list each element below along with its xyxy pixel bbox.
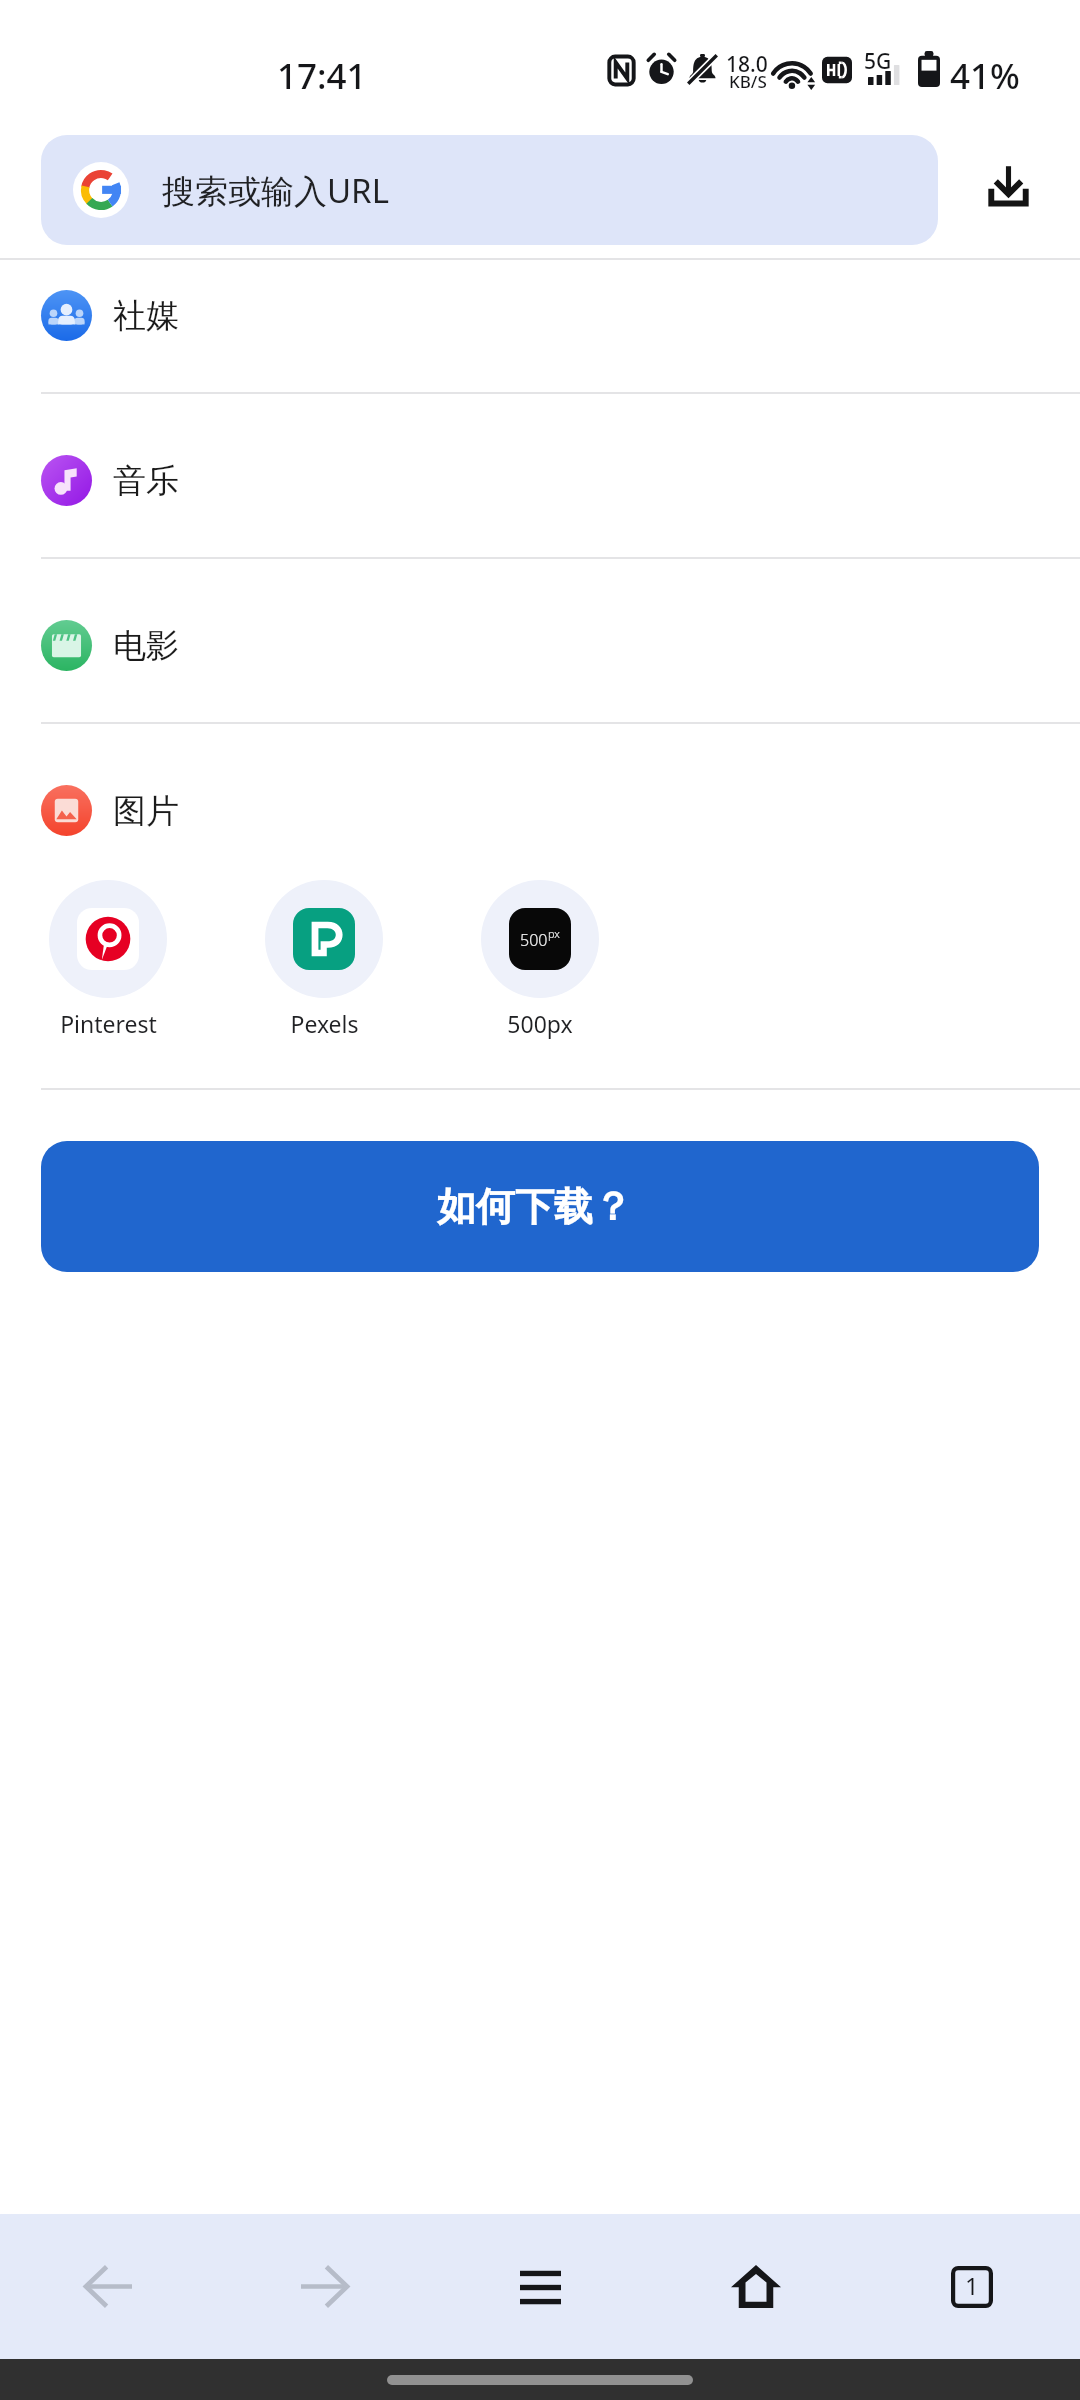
button[interactable]: 500 [440, 880, 640, 1039]
staticText: 41% [950, 52, 1020, 100]
button[interactable]: 如何下载？ [41, 1141, 1039, 1272]
staticText: 1 [965, 2269, 979, 2302]
staticText: 500px [507, 1008, 573, 1039]
staticText: Pinterest [60, 1008, 157, 1039]
staticText: 电影 [113, 625, 179, 667]
button[interactable]: Forward [216, 2214, 432, 2359]
staticText: 图片 [113, 790, 179, 832]
button[interactable]: 电影 [0, 559, 1080, 722]
button[interactable]: Pexels [224, 880, 424, 1039]
staticText: 音乐 [113, 460, 179, 502]
staticText: 社媒 [113, 295, 179, 337]
staticText: 500 [520, 929, 548, 951]
staticText: KB/S [729, 70, 767, 93]
button[interactable]: 搜索或输入URL [41, 135, 938, 245]
button[interactable]: Menu [432, 2214, 648, 2359]
staticText: 17:41 [277, 52, 367, 100]
staticText: 18.0 [726, 50, 768, 79]
staticText: Pexels [290, 1008, 359, 1039]
button[interactable]: Tabs [864, 2214, 1080, 2359]
button[interactable]: 图片 [0, 724, 1080, 872]
button[interactable]: 音乐 [0, 394, 1080, 557]
button[interactable]: Downloads [960, 138, 1056, 234]
button[interactable]: 社媒 [0, 260, 1080, 392]
button[interactable]: Home [648, 2214, 864, 2359]
staticText: 5G [864, 47, 892, 76]
button[interactable]: Pinterest [8, 880, 208, 1039]
staticText: px [548, 926, 560, 941]
staticText: 如何下载？ [437, 1182, 632, 1231]
button[interactable]: Back [0, 2214, 216, 2359]
staticText: 搜索或输入URL [162, 168, 389, 213]
